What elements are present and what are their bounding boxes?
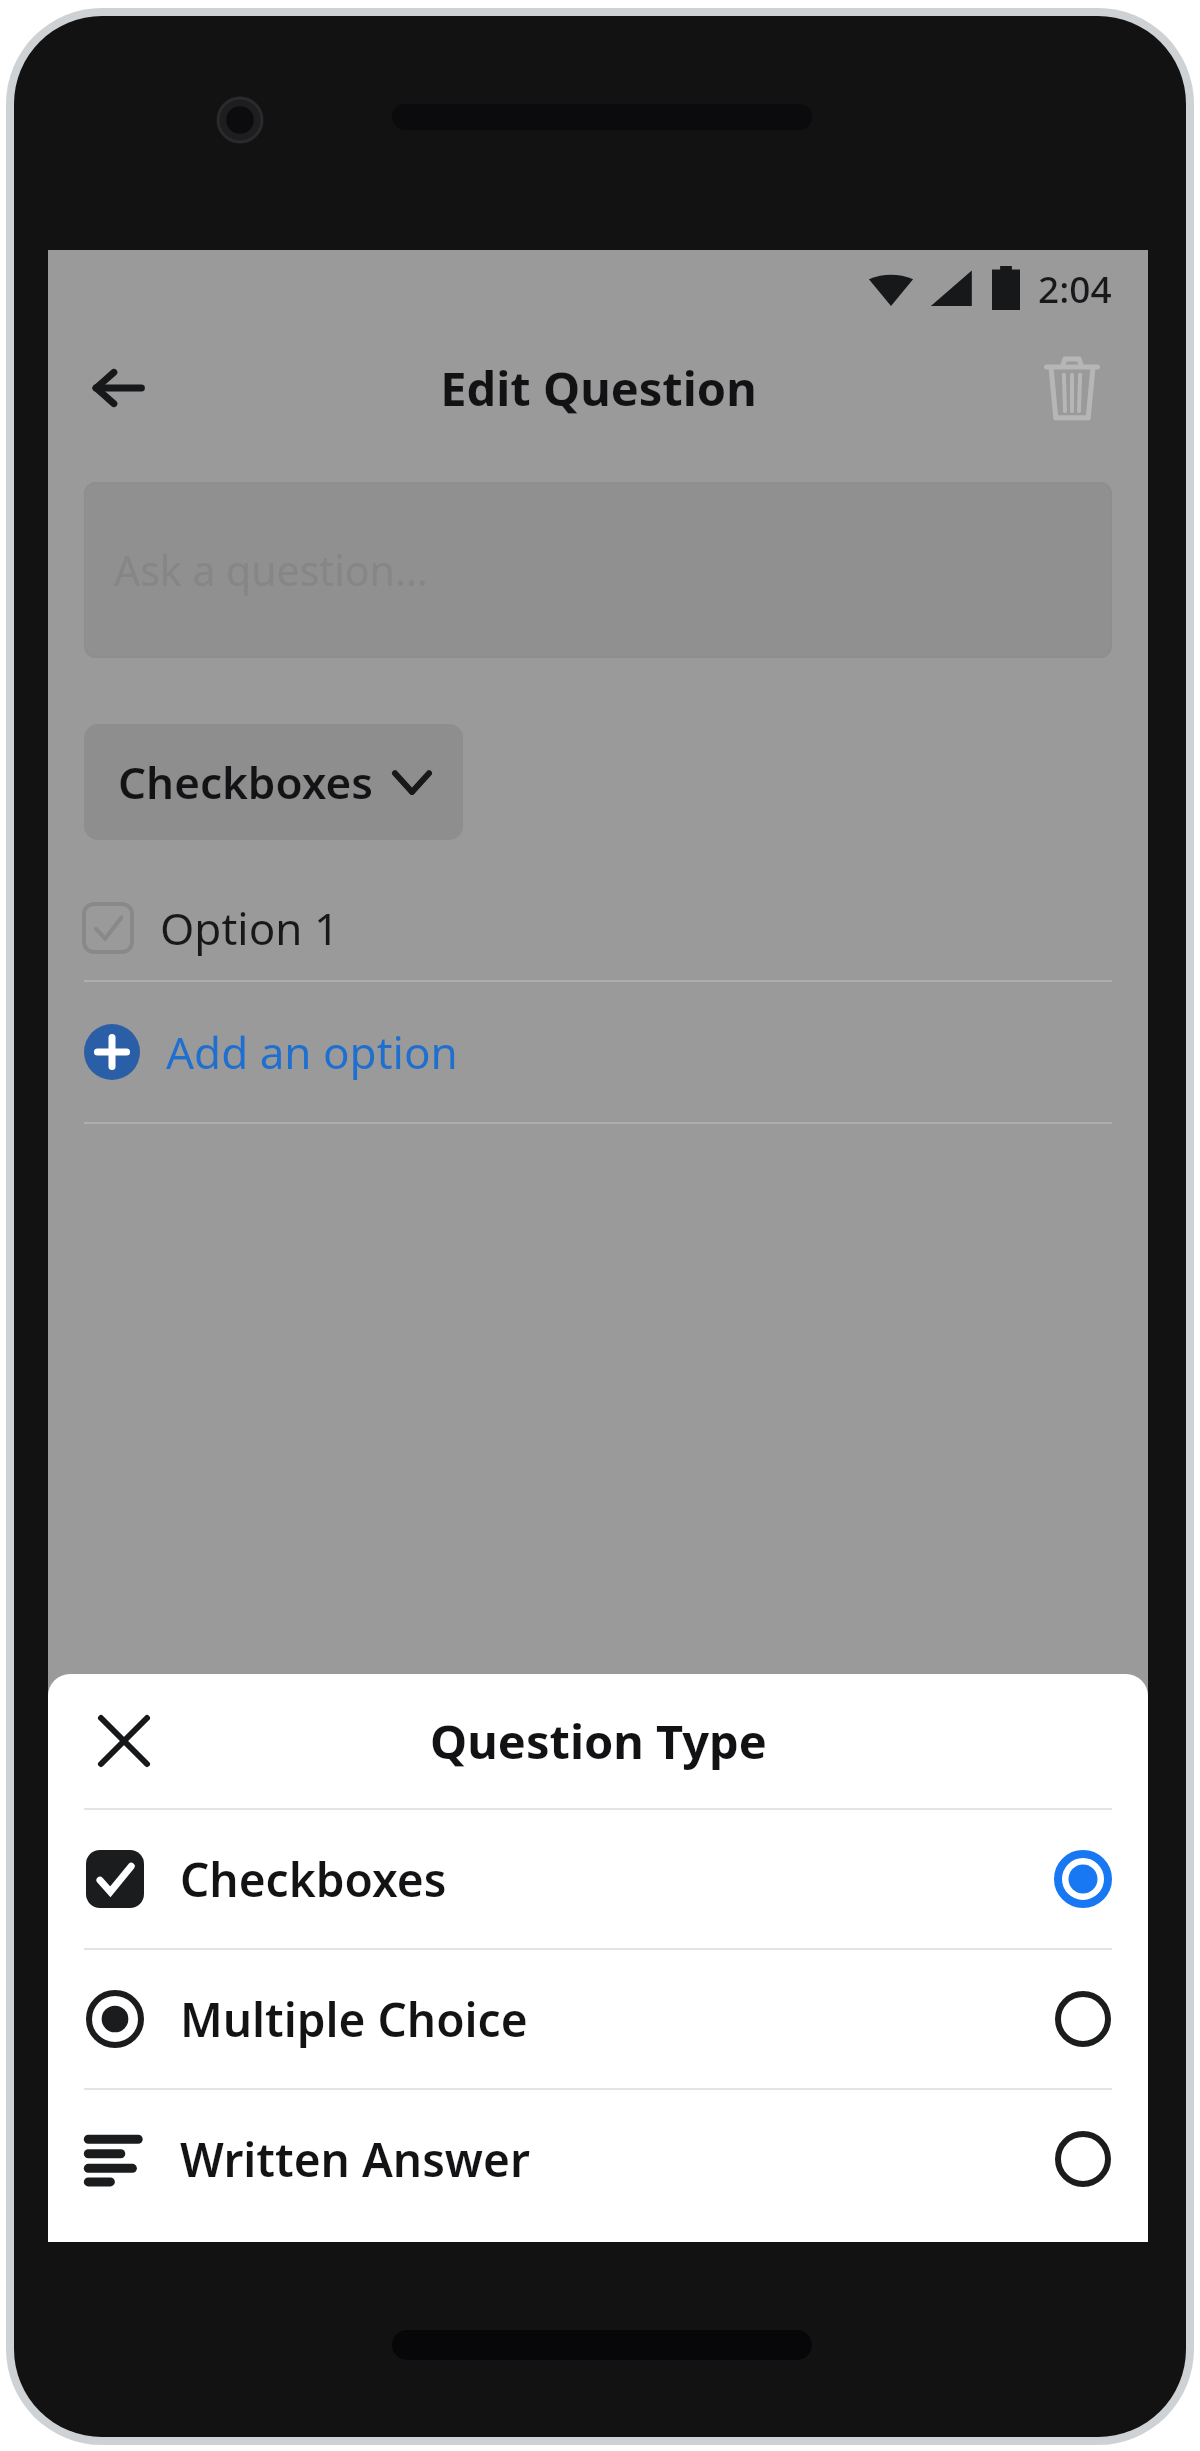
staticText: Edit Question bbox=[440, 356, 757, 420]
button[interactable]: Delete bbox=[1026, 342, 1118, 434]
staticText: Ask a question... bbox=[114, 542, 428, 598]
staticText: Add an option bbox=[166, 1022, 458, 1082]
staticText: Checkboxes bbox=[180, 1848, 1054, 1911]
button[interactable]: Add an option bbox=[84, 982, 1112, 1122]
staticText: Checkboxes bbox=[118, 752, 373, 812]
button[interactable]: Back bbox=[72, 342, 164, 434]
button[interactable]: Multiple Choice bbox=[48, 1950, 1148, 2088]
button[interactable]: Checkboxes bbox=[48, 1810, 1148, 1948]
button[interactable]: Written Answer bbox=[48, 2090, 1148, 2228]
staticText: 2:04 bbox=[1038, 263, 1112, 313]
button[interactable]: Checkboxes bbox=[84, 724, 463, 840]
staticText: Question Type bbox=[430, 1709, 767, 1773]
staticText: Option 1 bbox=[160, 898, 340, 958]
staticText: Multiple Choice bbox=[180, 1988, 1054, 2051]
button[interactable]: Close bbox=[84, 1701, 164, 1781]
staticText: Written Answer bbox=[180, 2128, 1054, 2191]
button[interactable]: Option 1 bbox=[84, 876, 1112, 980]
